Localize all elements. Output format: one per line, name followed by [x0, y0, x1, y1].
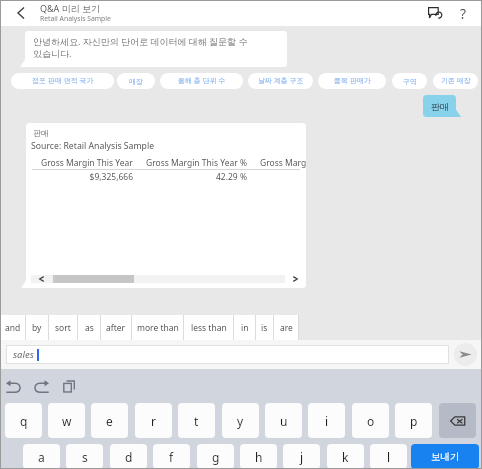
- button[interactable]: 보내기: [411, 444, 479, 469]
- button[interactable]: e: [91, 403, 128, 438]
- staticText: Gross Margin This Year %: [146, 157, 247, 169]
- staticText: 올해 총 단위 수: [178, 76, 226, 86]
- button[interactable]: p: [395, 403, 432, 438]
- button[interactable]: Chat history: [422, 0, 448, 26]
- button[interactable]: as: [78, 315, 100, 340]
- staticText: ?: [460, 4, 467, 23]
- staticText: d: [125, 449, 133, 465]
- button[interactable]: after: [101, 315, 131, 340]
- staticText: t: [194, 413, 199, 429]
- staticText: q: [20, 413, 28, 429]
- button[interactable]: Undo: [6, 375, 21, 397]
- button[interactable]: l: [370, 444, 407, 469]
- staticText: as: [85, 322, 94, 334]
- button[interactable]: t: [178, 403, 215, 438]
- staticText: is: [261, 322, 268, 334]
- staticText: 판매: [33, 128, 49, 138]
- button[interactable]: Redo: [34, 375, 49, 397]
- button[interactable]: Scroll right: [288, 275, 303, 283]
- staticText: Q&A 미리 보기: [40, 2, 101, 14]
- staticText: i: [325, 413, 329, 429]
- staticText: 품목 판매가: [334, 76, 371, 86]
- button[interactable]: 기존 매장: [433, 73, 478, 89]
- staticText: y: [237, 413, 244, 429]
- staticText: e: [106, 413, 113, 429]
- staticText: 있습니다.: [33, 47, 72, 59]
- button[interactable]: 올해 총 단위 수: [160, 73, 243, 89]
- button[interactable]: f: [153, 444, 190, 469]
- button[interactable]: 점포 판매 면적 국가: [11, 73, 114, 89]
- staticText: 점포 판매 면적 국가: [32, 76, 94, 86]
- button[interactable]: 매장: [117, 73, 155, 89]
- staticText: 매장: [129, 77, 143, 86]
- staticText: 42.29 %: [133, 171, 247, 182]
- button[interactable]: o: [352, 403, 389, 438]
- staticText: sort: [55, 322, 71, 334]
- staticText: more than: [137, 322, 179, 334]
- staticText: Retail Analysis Sample: [40, 14, 111, 23]
- staticText: 보내기: [431, 451, 460, 463]
- button[interactable]: i: [308, 403, 345, 438]
- button[interactable]: a: [23, 444, 60, 469]
- button[interactable]: y: [222, 403, 259, 438]
- button[interactable]: Scroll left: [34, 275, 49, 283]
- staticText: l: [387, 449, 391, 465]
- button[interactable]: Help: [450, 0, 476, 26]
- button[interactable]: g: [197, 444, 234, 469]
- button[interactable]: s: [66, 444, 103, 469]
- button[interactable]: h: [240, 444, 277, 469]
- staticText: in: [241, 322, 249, 334]
- staticText: Source: Retail Analysis Sample: [31, 140, 155, 152]
- button[interactable]: k: [327, 444, 364, 469]
- staticText: 안녕하세요. 자신만의 단어로 데이터에 대해 질문할 수: [33, 35, 248, 47]
- button[interactable]: less than: [184, 315, 233, 340]
- button[interactable]: and: [0, 315, 25, 340]
- staticText: 날짜 계층 구조: [258, 76, 304, 86]
- staticText: f: [169, 449, 174, 465]
- button[interactable]: Clipboard: [62, 375, 77, 397]
- button[interactable]: d: [110, 444, 147, 469]
- staticText: j: [300, 449, 304, 465]
- button[interactable]: w: [48, 403, 85, 438]
- staticText: a: [38, 449, 45, 465]
- button[interactable]: 날짜 계층 구조: [248, 73, 313, 89]
- button[interactable]: u: [265, 403, 302, 438]
- button[interactable]: r: [135, 403, 172, 438]
- staticText: w: [62, 413, 72, 429]
- staticText: sales: [13, 348, 34, 361]
- staticText: 판매: [431, 101, 449, 112]
- button[interactable]: j: [283, 444, 320, 469]
- staticText: o: [367, 413, 375, 429]
- button[interactable]: sort: [49, 315, 77, 340]
- button[interactable]: by: [26, 315, 48, 340]
- button[interactable]: Send: [454, 343, 477, 366]
- staticText: p: [410, 413, 418, 429]
- staticText: by: [32, 322, 42, 334]
- staticText: k: [342, 449, 349, 465]
- staticText: $9,325,666: [33, 171, 133, 182]
- staticText: g: [212, 449, 220, 465]
- button[interactable]: sales: [6, 345, 449, 364]
- staticText: u: [280, 413, 288, 429]
- button[interactable]: q: [5, 403, 42, 438]
- staticText: Gross Margin Last Year: [260, 157, 306, 169]
- button[interactable]: are: [274, 315, 298, 340]
- staticText: are: [280, 322, 293, 334]
- button[interactable]: more than: [132, 315, 183, 340]
- button[interactable]: Back: [8, 0, 34, 26]
- button[interactable]: in: [234, 315, 255, 340]
- staticText: after: [106, 322, 126, 334]
- button[interactable]: is: [256, 315, 273, 340]
- staticText: 기존 매장: [441, 76, 471, 86]
- staticText: less than: [191, 322, 227, 334]
- button[interactable]: 품목 판매가: [318, 73, 386, 89]
- staticText: r: [151, 413, 156, 429]
- staticText: Gross Margin This Year: [41, 157, 133, 169]
- staticText: s: [82, 449, 88, 465]
- staticText: 구역: [403, 77, 417, 86]
- staticText: and: [5, 322, 21, 334]
- button[interactable]: 구역: [392, 73, 427, 89]
- button[interactable]: Backspace: [439, 403, 476, 438]
- staticText: h: [255, 449, 263, 465]
